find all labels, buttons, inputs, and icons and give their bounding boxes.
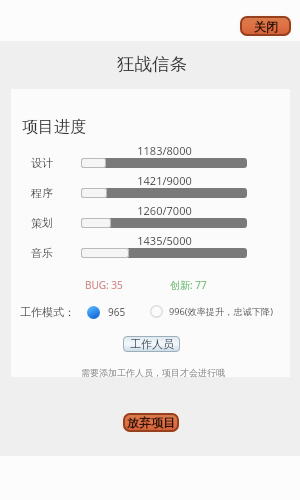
staticText: 工作模式： <box>20 305 75 319</box>
staticText: 狂战信条 <box>117 53 187 75</box>
staticText: 工作人员 <box>130 337 174 351</box>
staticText: 965 <box>108 305 126 319</box>
button[interactable]: 关闭 <box>238 14 293 38</box>
staticText: 需要添加工作人员，项目才会进行哦 <box>81 367 225 378</box>
staticText: 放弃项目 <box>127 415 175 430</box>
staticText: 996(效率提升，忠诚下降) <box>169 305 273 318</box>
staticText: 项目进度 <box>22 117 86 137</box>
staticText: 关闭 <box>254 19 278 34</box>
button[interactable]: 996(效率提升，忠诚下降) <box>150 305 273 318</box>
staticText: 设计 <box>31 156 53 170</box>
staticText: 1260/7000 <box>102 203 227 218</box>
staticText: 1183/8000 <box>102 143 227 158</box>
staticText: 程序 <box>31 186 53 200</box>
staticText: 音乐 <box>31 246 53 260</box>
staticText: 1435/5000 <box>102 233 227 248</box>
button[interactable]: 工作人员 <box>123 336 180 352</box>
button[interactable]: 965 <box>87 305 126 319</box>
button[interactable]: 放弃项目 <box>121 411 181 434</box>
staticText: 策划 <box>31 216 53 230</box>
staticText: 1421/9000 <box>102 173 227 188</box>
staticText: 创新: 77 <box>170 278 207 292</box>
staticText: BUG: 35 <box>85 278 123 292</box>
